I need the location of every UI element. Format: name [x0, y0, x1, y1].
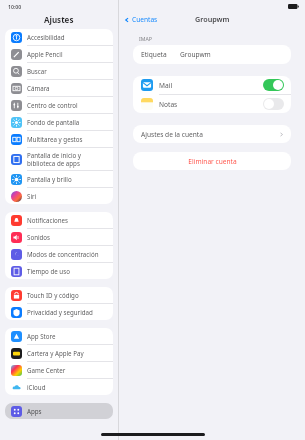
staticText: Modos de concentración	[27, 250, 99, 258]
staticText: Cartera y Apple Pay	[27, 349, 84, 357]
staticText: Eliminar cuenta	[188, 157, 237, 166]
staticText: Privacidad y seguridad	[27, 308, 93, 316]
staticText: Game Center	[27, 366, 66, 374]
button[interactable]: Ajustes de la cuenta	[133, 125, 291, 143]
button[interactable]: Buscar	[5, 63, 113, 79]
button[interactable]: App Store	[5, 328, 113, 344]
staticText: Accesibilidad	[27, 33, 65, 41]
staticText: Ajustes de la cuenta	[141, 130, 203, 139]
staticText: Notificaciones	[27, 216, 69, 224]
button[interactable]: Accesibilidad	[5, 29, 113, 45]
staticText: Cámara	[27, 84, 50, 92]
button[interactable]: Mail	[133, 76, 291, 94]
staticText: App Store	[27, 332, 56, 340]
staticText: Ajustes	[44, 14, 74, 25]
button[interactable]: Eliminar cuenta	[133, 152, 291, 170]
button[interactable]: Apps	[5, 403, 113, 419]
button[interactable]: Notas desactivado	[263, 98, 284, 110]
staticText: Tiempo de uso	[27, 267, 70, 275]
button[interactable]: Fondo de pantalla	[5, 114, 113, 130]
staticText: Groupwm	[195, 14, 230, 24]
staticText: biblioteca de apps	[27, 159, 80, 167]
staticText: Pantalla y brillo	[27, 175, 72, 183]
staticText: Mail	[159, 81, 173, 90]
button[interactable]: Apple Pencil	[5, 46, 113, 62]
button[interactable]: Cuentas	[124, 15, 158, 24]
staticText: Fondo de pantalla	[27, 118, 80, 126]
staticText: Groupwm	[180, 50, 211, 59]
button[interactable]: Notificaciones	[5, 212, 113, 228]
staticText: Pantalla de inicio y	[27, 151, 82, 159]
button[interactable]: Multitarea y gestos	[5, 131, 113, 147]
button[interactable]: Mail activado	[263, 79, 284, 91]
button[interactable]: Modos de concentración	[5, 246, 113, 262]
button[interactable]: iCloud	[5, 379, 113, 395]
staticText: Etiqueta	[141, 50, 167, 59]
button[interactable]: Cartera y Apple Pay	[5, 345, 113, 361]
button[interactable]: Pantalla y brillo	[5, 171, 113, 187]
button[interactable]: Cámara	[5, 80, 113, 96]
staticText: Sonidos	[27, 233, 51, 241]
button[interactable]: Notas	[133, 95, 291, 113]
staticText: Apple Pencil	[27, 50, 63, 58]
button[interactable]: Sonidos	[5, 229, 113, 245]
button[interactable]: Pantalla de inicio y	[5, 148, 113, 170]
staticText: Apps	[27, 407, 42, 415]
staticText: iCloud	[27, 383, 46, 391]
staticText: Multitarea y gestos	[27, 135, 83, 143]
staticText: Notas	[159, 100, 178, 109]
staticText: 10:00	[8, 3, 22, 10]
staticText: Cuentas	[132, 15, 158, 24]
button[interactable]: Etiqueta	[133, 45, 291, 64]
button[interactable]: Siri	[5, 188, 113, 204]
button[interactable]: Privacidad y seguridad	[5, 304, 113, 320]
button[interactable]: Game Center	[5, 362, 113, 378]
staticText: Buscar	[27, 67, 47, 75]
button[interactable]: Centro de control	[5, 97, 113, 113]
staticText: Centro de control	[27, 101, 78, 109]
staticText: IMAP	[139, 35, 152, 42]
staticText: Touch ID y código	[27, 291, 79, 299]
staticText: Siri	[27, 192, 37, 200]
button[interactable]: Touch ID y código	[5, 287, 113, 303]
button[interactable]: Tiempo de uso	[5, 263, 113, 279]
